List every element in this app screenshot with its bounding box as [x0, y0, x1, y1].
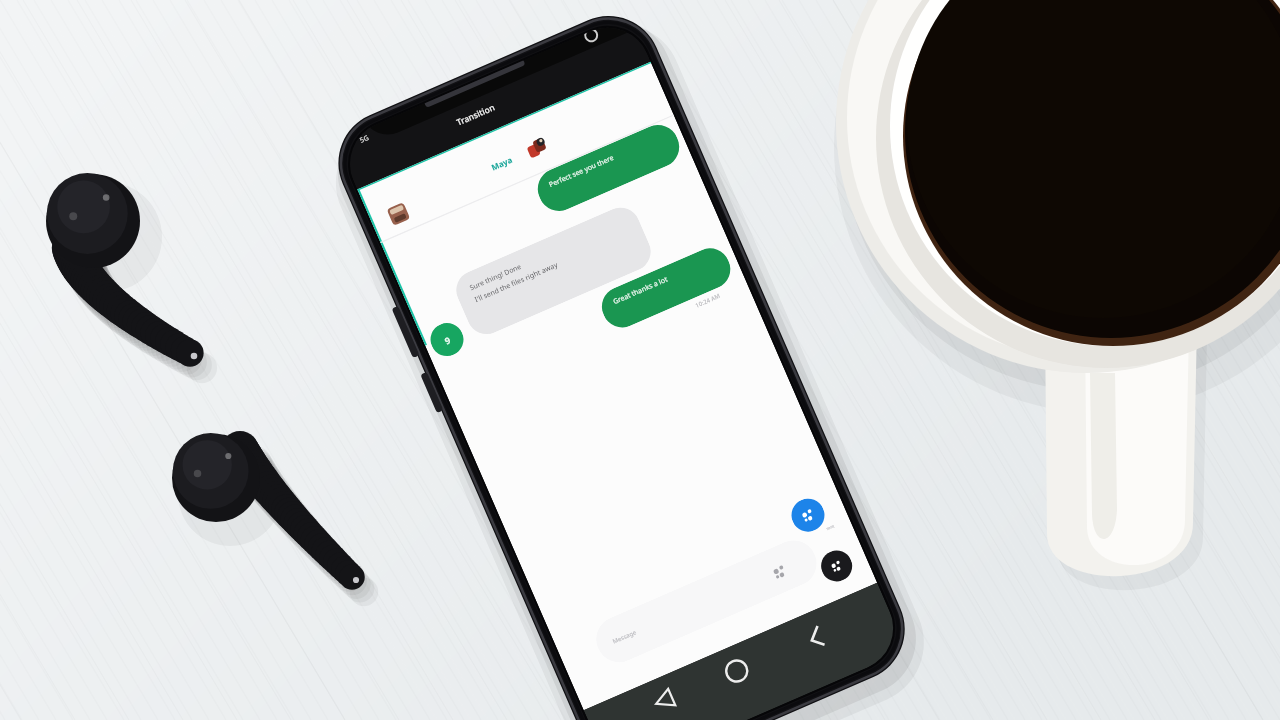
button[interactable]: Attach [816, 546, 857, 586]
staticText: Message [611, 628, 638, 646]
staticText: Perfect see you there [548, 153, 616, 190]
button[interactable]: Message [589, 533, 824, 669]
staticText: Great thanks a lot [612, 274, 670, 307]
button[interactable]: Contact photo [387, 202, 410, 226]
button[interactable]: Unread messages [425, 318, 469, 361]
button[interactable]: Back [634, 669, 697, 720]
button[interactable]: New chat [786, 493, 830, 537]
staticText: Sure thing! Done I'll send the files rig… [468, 248, 559, 304]
button[interactable]: Perfect see you there [531, 118, 686, 217]
button[interactable]: Maya [489, 154, 514, 173]
staticText: 9 [442, 333, 453, 346]
button[interactable]: Recent apps [783, 605, 846, 668]
staticText: 10:24 AM [694, 292, 722, 310]
staticText: 5G [358, 133, 371, 146]
staticText: sent [825, 523, 836, 531]
button[interactable]: Reaction [525, 137, 548, 158]
button[interactable]: Emoji [765, 557, 794, 586]
button[interactable]: Sure thing! Done I'll send the files rig… [450, 201, 657, 340]
button[interactable]: Home [705, 638, 768, 702]
button[interactable]: Great thanks a lot [596, 242, 737, 334]
staticText: Transition [455, 101, 497, 129]
